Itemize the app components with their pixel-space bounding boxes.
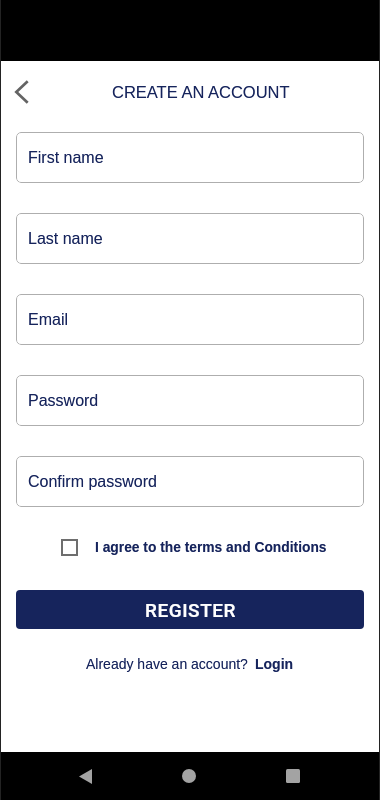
staticText: Email <box>28 311 69 329</box>
staticText: First name <box>28 149 104 167</box>
staticText: CREATE AN ACCOUNT <box>112 83 290 101</box>
button[interactable]: Password <box>16 375 364 426</box>
button[interactable]: Last name <box>16 213 364 264</box>
button[interactable]: Confirm password <box>16 456 364 507</box>
button[interactable]: Recents <box>271 754 315 798</box>
staticText: CREATE AN ACCOUNT <box>112 83 290 101</box>
staticText: Password <box>28 392 99 410</box>
staticText: First name <box>28 149 104 167</box>
button[interactable]: Login <box>255 656 294 672</box>
button[interactable]: REGISTER <box>16 590 364 629</box>
button[interactable]: First name <box>16 132 364 183</box>
staticText: Last name <box>28 230 103 248</box>
staticText: Login <box>255 656 294 672</box>
button[interactable]: I agree to the terms and Conditions <box>61 539 327 556</box>
button[interactable]: Back <box>1 71 43 113</box>
staticText: Last name <box>28 230 103 248</box>
button[interactable]: Email <box>16 294 364 345</box>
staticText: Already have an account? <box>86 656 248 672</box>
staticText: Login <box>255 656 294 672</box>
staticText: REGISTER <box>145 599 236 621</box>
staticText: Confirm password <box>28 473 157 491</box>
staticText: Password <box>28 392 99 410</box>
staticText: Email <box>28 311 69 329</box>
staticText: I agree to the terms and Conditions <box>95 540 327 555</box>
staticText: Already have an account? <box>86 656 248 672</box>
staticText: I agree to the terms and Conditions <box>95 540 327 555</box>
staticText: Confirm password <box>28 473 157 491</box>
button[interactable]: Back <box>63 754 107 798</box>
button[interactable]: Home <box>167 754 211 798</box>
